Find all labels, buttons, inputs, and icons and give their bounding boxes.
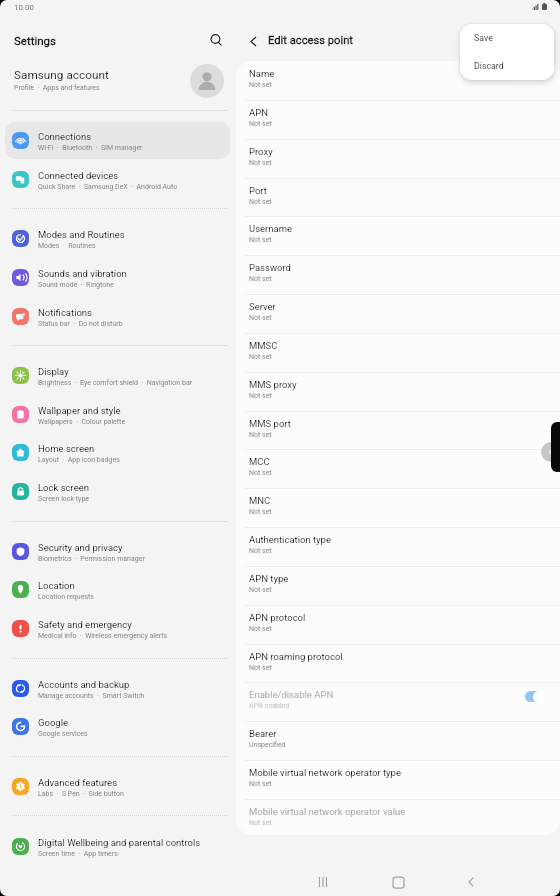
button[interactable]: Security and privacy — [5, 533, 230, 570]
staticText: Sounds and vibration — [38, 268, 127, 279]
staticText: Not set — [249, 353, 272, 361]
staticText: Not set — [249, 780, 272, 788]
staticText: Unspecified — [249, 741, 286, 749]
button[interactable]: Mobile virtual network operator type — [236, 760, 560, 798]
staticText: Manage accounts · Smart Switch — [38, 692, 145, 700]
staticText: APN enabled — [249, 702, 290, 710]
staticText: Display — [38, 366, 69, 377]
staticText: Not set — [249, 392, 272, 400]
staticText: APN roaming protocol — [249, 651, 343, 662]
button[interactable]: Connected devices — [5, 161, 230, 198]
staticText: Not set — [249, 547, 272, 555]
staticText: Profile · Apps and features — [14, 84, 100, 92]
staticText: Proxy — [249, 146, 273, 157]
button[interactable]: Back — [457, 868, 485, 896]
button[interactable]: Home — [384, 868, 412, 896]
staticText: Save — [474, 33, 493, 43]
staticText: APN — [249, 107, 268, 118]
button[interactable]: Mobile virtual network operator value — [236, 799, 560, 835]
button[interactable]: MCC — [236, 449, 560, 487]
staticText: Discard — [474, 61, 504, 71]
staticText: 10.00 — [14, 3, 34, 12]
button[interactable]: Server — [236, 294, 560, 332]
button[interactable]: Home screen — [5, 434, 230, 471]
staticText: Port — [249, 185, 267, 196]
button[interactable]: Accounts and backup — [5, 670, 230, 707]
button[interactable]: Google — [5, 708, 230, 745]
staticText: Home screen — [38, 443, 95, 454]
button[interactable]: Edge panel — [541, 442, 560, 462]
staticText: Status bar · Do not disturb — [38, 320, 123, 328]
staticText: Not set — [249, 159, 272, 167]
staticText: Google services — [38, 730, 88, 738]
button[interactable]: MMSC — [236, 333, 560, 371]
button[interactable]: MMS port — [236, 411, 560, 449]
staticText: Location — [38, 580, 75, 591]
staticText: Security and privacy — [38, 542, 123, 553]
button[interactable]: Digital Wellbeing and parental controls — [5, 828, 230, 865]
staticText: Not set — [249, 81, 272, 89]
button[interactable]: Recent apps — [309, 868, 337, 896]
staticText: Layout · App icon badges — [38, 456, 120, 464]
staticText: Brightness · Eye comfort shield · Naviga… — [38, 379, 193, 387]
staticText: Not set — [249, 508, 272, 516]
button[interactable]: MMS proxy — [236, 372, 560, 410]
button[interactable]: Display — [5, 357, 230, 394]
staticText: Authentication type — [249, 534, 331, 545]
button[interactable]: Sounds and vibration — [5, 259, 230, 296]
staticText: Medical info · Wireless emergency alerts — [38, 632, 168, 640]
staticText: APN type — [249, 573, 289, 584]
button[interactable]: MNC — [236, 488, 560, 526]
staticText: Wallpapers · Colour palette — [38, 418, 126, 426]
staticText: Not set — [249, 664, 272, 672]
staticText: Connected devices — [38, 170, 119, 181]
button[interactable]: Connections — [5, 122, 230, 159]
button[interactable]: APN protocol — [236, 605, 560, 643]
staticText: Advanced features — [38, 777, 118, 788]
staticText: Username — [249, 223, 293, 234]
staticText: Accounts and backup — [38, 679, 130, 690]
button[interactable]: Authentication type — [236, 527, 560, 565]
staticText: Sound mode · Ringtone — [38, 281, 114, 289]
button[interactable]: Username — [236, 216, 560, 254]
button[interactable]: Safety and emergency — [5, 610, 230, 647]
button[interactable]: Enable/disable APN — [236, 682, 560, 722]
staticText: Location requests — [38, 593, 94, 601]
button[interactable]: Discard — [460, 52, 554, 80]
staticText: Not set — [249, 236, 272, 244]
staticText: Screen lock type — [38, 495, 90, 503]
button[interactable]: Search — [204, 28, 228, 52]
button[interactable]: Notifications — [5, 298, 230, 335]
staticText: Not set — [249, 469, 272, 477]
staticText: Mobile virtual network operator value — [249, 806, 406, 817]
button[interactable]: Samsung account — [5, 62, 235, 100]
staticText: Not set — [249, 431, 272, 439]
button[interactable]: APN type — [236, 566, 560, 604]
button[interactable]: Modes and Routines — [5, 220, 230, 257]
button[interactable]: Proxy — [236, 139, 560, 177]
staticText: Name — [249, 68, 275, 79]
staticText: Not set — [249, 586, 272, 594]
staticText: Modes · Routines — [38, 242, 96, 250]
button[interactable]: Port — [236, 178, 560, 216]
button[interactable]: Wallpaper and style — [5, 396, 230, 433]
button[interactable]: Advanced features — [5, 768, 230, 805]
button[interactable]: Location — [5, 571, 230, 608]
button[interactable]: Save — [460, 24, 554, 52]
button[interactable]: Name — [236, 61, 560, 99]
button[interactable]: APN roaming protocol — [236, 644, 560, 682]
staticText: Server — [249, 301, 276, 312]
staticText: Samsung account — [14, 68, 109, 82]
button[interactable]: Bearer — [236, 721, 560, 759]
staticText: Not set — [249, 625, 272, 633]
staticText: Modes and Routines — [38, 229, 125, 240]
staticText: Lock screen — [38, 482, 90, 493]
button[interactable]: Lock screen — [5, 473, 230, 510]
staticText: Quick Share · Samsung DeX · Android Auto — [38, 183, 178, 191]
staticText: Not set — [249, 275, 272, 283]
button[interactable]: Back — [241, 29, 265, 53]
staticText: Notifications — [38, 307, 93, 318]
button[interactable]: APN — [236, 100, 560, 138]
staticText: APN protocol — [249, 612, 306, 623]
button[interactable]: Password — [236, 255, 560, 293]
